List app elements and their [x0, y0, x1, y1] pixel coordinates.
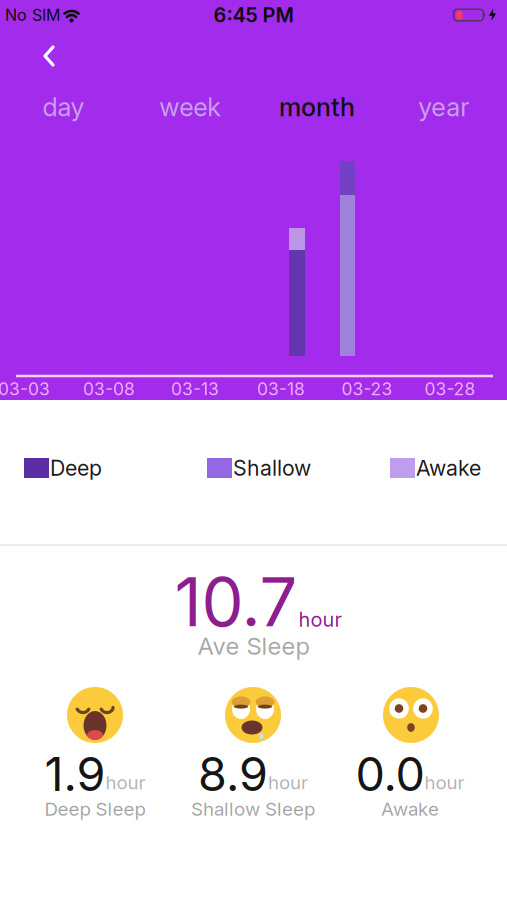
- staticText: hour: [268, 771, 308, 793]
- staticText: 03-18: [257, 379, 305, 399]
- button[interactable]: day: [0, 90, 127, 124]
- staticText: month: [279, 92, 355, 122]
- staticText: Awake: [416, 455, 481, 481]
- staticText: 03-23: [341, 379, 392, 399]
- staticText: 03-13: [171, 379, 219, 399]
- staticText: 8.9: [198, 746, 268, 802]
- staticText: hour: [424, 771, 464, 793]
- button[interactable]: week: [127, 90, 254, 124]
- staticText: 03-03: [0, 379, 50, 399]
- staticText: Ave Sleep: [197, 632, 309, 660]
- staticText: 6:45 PM: [213, 3, 293, 27]
- staticText: Awake: [381, 798, 439, 820]
- staticText: 03-28: [424, 379, 475, 399]
- staticText: year: [418, 92, 469, 122]
- button[interactable]: month: [253, 90, 380, 124]
- staticText: hour: [298, 608, 341, 631]
- staticText: No SIM: [5, 6, 60, 24]
- staticText: Deep Sleep: [44, 798, 145, 820]
- staticText: 10.7: [174, 563, 297, 641]
- staticText: 0.0: [355, 746, 424, 802]
- staticText: hour: [105, 771, 145, 793]
- staticText: week: [159, 92, 221, 122]
- staticText: 1.9: [44, 746, 105, 802]
- staticText: Shallow: [233, 455, 311, 481]
- button[interactable]: year: [380, 90, 507, 124]
- staticText: 03-08: [83, 379, 135, 399]
- staticText: Shallow Sleep: [191, 798, 315, 820]
- button[interactable]: Back: [32, 35, 66, 77]
- staticText: day: [42, 92, 84, 122]
- staticText: Deep: [50, 455, 102, 481]
